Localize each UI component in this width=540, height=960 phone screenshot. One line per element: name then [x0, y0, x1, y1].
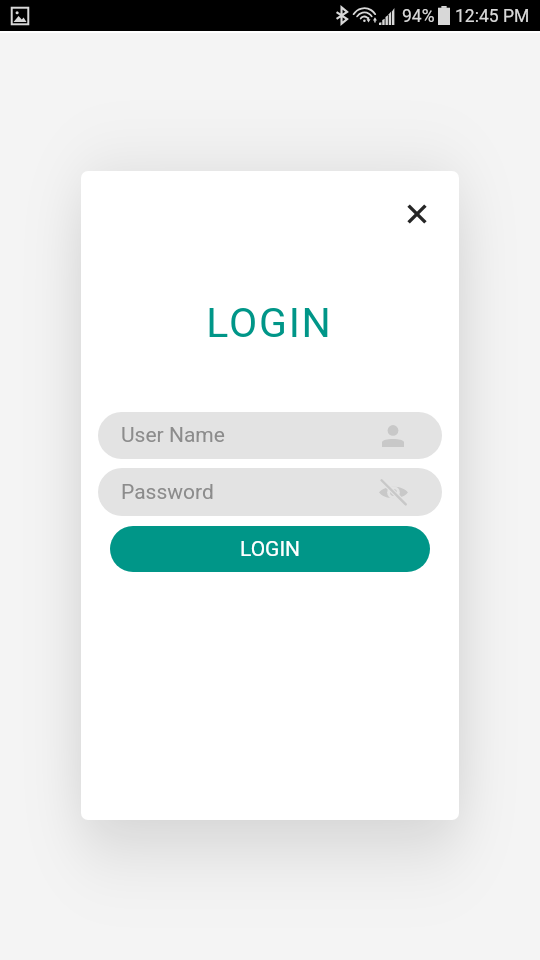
staticText: 12:45 PM	[455, 6, 530, 27]
staticText: Password	[121, 480, 214, 505]
staticText: LOGIN	[240, 537, 301, 562]
staticText: 94%	[402, 6, 435, 27]
staticText: LOGIN	[206, 299, 333, 343]
button[interactable]: LOGIN	[110, 526, 430, 572]
button[interactable]: Show password	[376, 475, 410, 509]
button[interactable]: User Name	[98, 412, 442, 459]
staticText: User Name	[121, 423, 225, 448]
button[interactable]: Close	[392, 189, 441, 238]
button[interactable]: Password	[98, 468, 442, 516]
button[interactable]: Account	[376, 419, 410, 453]
